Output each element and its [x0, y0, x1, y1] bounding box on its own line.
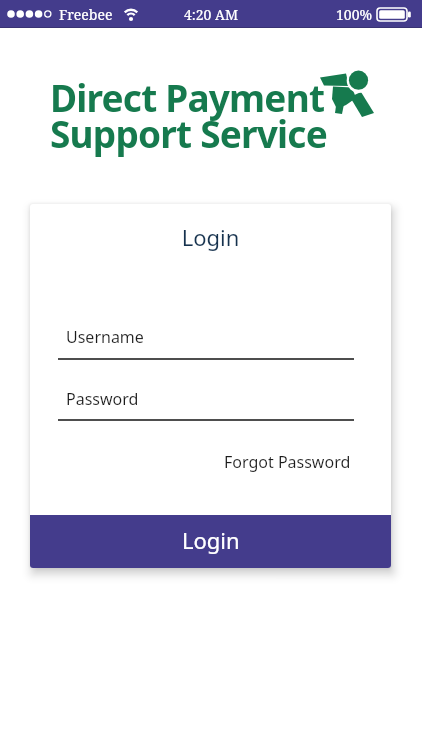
button[interactable]: Login	[30, 515, 391, 568]
button[interactable]: Forgot Password	[224, 451, 351, 473]
staticText: 4:20 AM	[0, 5, 422, 24]
staticText: Login	[182, 525, 240, 555]
staticText: Username	[66, 326, 144, 348]
staticText: Freebee	[59, 5, 113, 24]
staticText: 100%	[336, 5, 373, 24]
staticText: Forgot Password	[224, 451, 351, 473]
staticText: Password	[66, 388, 139, 410]
staticText: Login	[30, 222, 391, 252]
staticText: Direct Payment	[50, 72, 325, 122]
staticText: Support Service	[50, 108, 327, 158]
